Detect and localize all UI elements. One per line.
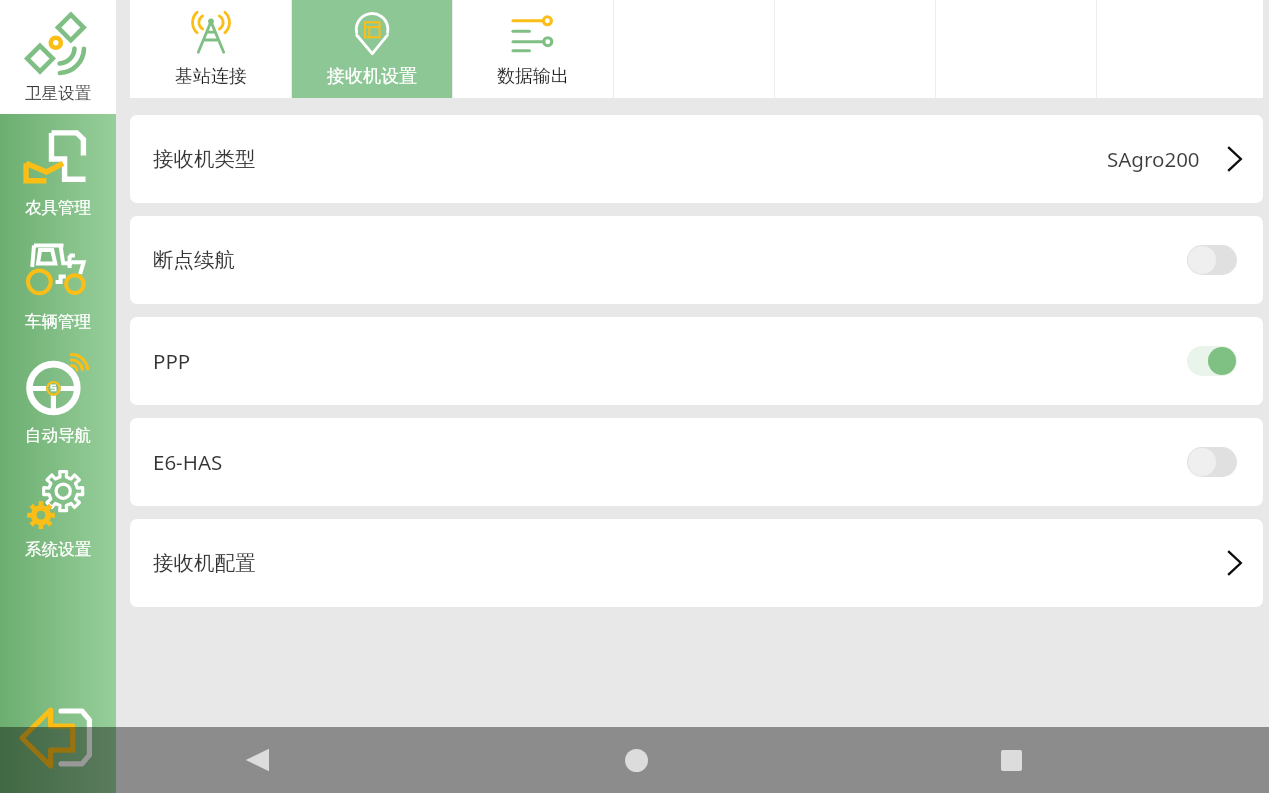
button[interactable]: Back bbox=[213, 727, 301, 793]
button[interactable]: 农具管理 bbox=[0, 114, 116, 228]
staticText: 接收机类型 bbox=[153, 146, 256, 172]
button[interactable]: 接收机配置 bbox=[130, 519, 1263, 607]
staticText: 系统设置 bbox=[25, 539, 91, 560]
staticText: 断点续航 bbox=[153, 247, 235, 273]
button[interactable]: Exit bbox=[18, 706, 94, 770]
button[interactable]: 接收机设置 bbox=[292, 0, 452, 98]
staticText: 数据输出 bbox=[497, 65, 569, 88]
staticText: 基站连接 bbox=[175, 65, 247, 88]
button[interactable]: E6-HAS bbox=[130, 418, 1263, 506]
button[interactable]: 系统设置 bbox=[0, 456, 116, 570]
button[interactable]: 自动导航 bbox=[0, 342, 116, 456]
staticText: 自动导航 bbox=[25, 425, 91, 446]
staticText: 接收机配置 bbox=[153, 550, 256, 576]
staticText: 农具管理 bbox=[25, 197, 91, 218]
button[interactable]: 断点续航 bbox=[130, 216, 1263, 304]
staticText: SAgro200 bbox=[1107, 145, 1200, 173]
button[interactable]: 数据输出 bbox=[453, 0, 613, 98]
staticText: PPP bbox=[153, 347, 191, 375]
button[interactable]: 车辆管理 bbox=[0, 228, 116, 342]
button[interactable]: Toggle off bbox=[1187, 245, 1237, 275]
button[interactable]: 接收机类型 bbox=[130, 115, 1263, 203]
staticText: 卫星设置 bbox=[25, 83, 91, 104]
button[interactable]: Toggle on bbox=[1187, 346, 1237, 376]
button[interactable]: Recent apps bbox=[967, 727, 1055, 793]
button[interactable]: 卫星设置 bbox=[0, 0, 116, 114]
button[interactable]: Toggle off bbox=[1187, 447, 1237, 477]
button[interactable]: 基站连接 bbox=[130, 0, 291, 98]
staticText: 车辆管理 bbox=[25, 311, 91, 332]
button[interactable]: Home bbox=[592, 727, 680, 793]
button[interactable]: PPP bbox=[130, 317, 1263, 405]
staticText: E6-HAS bbox=[153, 448, 223, 476]
staticText: 接收机设置 bbox=[327, 65, 417, 88]
